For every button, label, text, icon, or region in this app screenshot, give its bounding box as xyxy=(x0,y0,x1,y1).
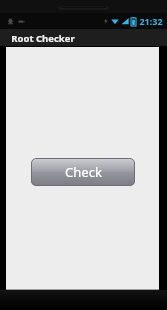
staticText: Root Checker xyxy=(11,32,75,45)
button[interactable]: Check xyxy=(31,158,135,186)
staticText: Check xyxy=(65,163,102,181)
staticText: 21:32 xyxy=(139,15,163,27)
